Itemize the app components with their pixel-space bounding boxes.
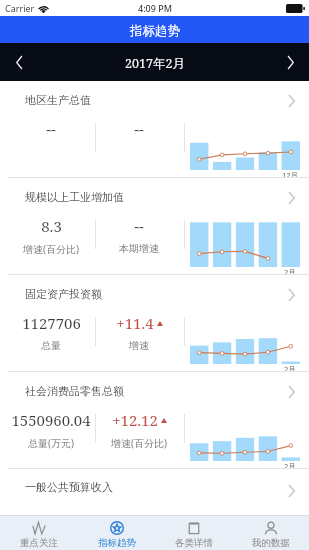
staticText: 规模以上工业增加值 (25, 190, 124, 204)
staticText: -- (134, 216, 144, 236)
staticText: 指标趋势 (98, 537, 136, 549)
staticText: 一般公共预算收入 (25, 480, 113, 494)
staticText: 1550960.04 (11, 410, 91, 430)
button[interactable]: 规模以上工业增加值 (0, 178, 309, 274)
button[interactable]: 固定资产投资额 (0, 275, 309, 371)
staticText: 本期增速 (119, 242, 159, 255)
staticText: -- (134, 119, 144, 139)
button[interactable]: 指标趋势 (78, 516, 155, 550)
staticText: 1127706 (22, 313, 81, 333)
staticText: +11.4 (116, 313, 154, 333)
staticText: 增速(百分比) (23, 242, 79, 256)
staticText: 增速(百分比) (111, 436, 167, 450)
button[interactable]: 我的数据 (232, 516, 309, 550)
button[interactable]: Next month (271, 43, 309, 81)
staticText: 重点关注 (20, 537, 58, 549)
staticText: 4:09 PM (138, 2, 172, 14)
button[interactable]: 地区生产总值 (0, 81, 309, 177)
staticText: 社会消费品零售总额 (25, 384, 124, 398)
staticText: 各类详情 (175, 537, 213, 549)
staticText: -- (46, 119, 56, 139)
staticText: 固定资产投资额 (25, 287, 102, 301)
staticText: 12月 (282, 170, 299, 180)
staticText: 总量(万元) (28, 436, 74, 450)
staticText: 2017年2月 (125, 55, 185, 72)
staticText: 2月 (284, 364, 296, 374)
button[interactable]: Previous month (0, 43, 38, 81)
button[interactable]: 各类详情 (155, 516, 232, 550)
button[interactable]: 社会消费品零售总额 (0, 372, 309, 468)
button[interactable]: 重点关注 (0, 516, 78, 550)
staticText: 2月 (284, 461, 296, 471)
staticText: 8.3 (41, 216, 62, 236)
button[interactable]: 一般公共预算收入 (0, 469, 309, 515)
staticText: Carrier (5, 2, 35, 14)
staticText: 2月 (284, 267, 296, 277)
staticText: 地区生产总值 (25, 93, 91, 107)
staticText: 总量 (41, 339, 61, 352)
staticText: 指标趋势 (130, 23, 180, 39)
staticText: 我的数据 (252, 537, 290, 549)
staticText: 增速 (129, 339, 149, 352)
staticText: +12.12 (112, 410, 158, 430)
